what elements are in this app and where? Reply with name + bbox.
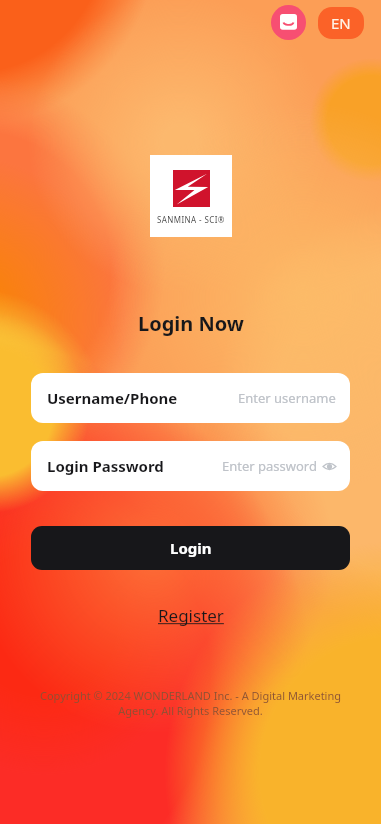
button[interactable]: Login Password <box>31 441 350 491</box>
staticText: Login Password <box>47 456 164 476</box>
button[interactable]: Login <box>31 526 350 570</box>
staticText: Username/Phone <box>47 388 178 408</box>
button[interactable]: EN <box>318 7 364 39</box>
staticText: Enter password <box>222 457 317 475</box>
staticText: SANMINA - SCI® <box>157 214 225 225</box>
staticText: Login Now <box>138 310 244 337</box>
button[interactable]: Register <box>152 602 230 629</box>
button[interactable]: Username/Phone <box>31 373 350 423</box>
button[interactable]: Chat support <box>271 5 306 40</box>
staticText: EN <box>331 13 351 33</box>
staticText: Enter username <box>238 389 336 407</box>
staticText: Login <box>170 538 212 558</box>
staticText: Copyright © 2024 WONDERLAND Inc. - A Dig… <box>28 688 353 718</box>
staticText: Register <box>158 604 224 627</box>
